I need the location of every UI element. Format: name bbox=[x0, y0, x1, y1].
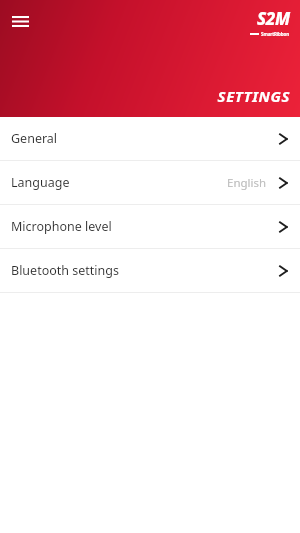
button[interactable]: S2M SmartRibbon logo bbox=[250, 7, 290, 37]
staticText: Microphone level bbox=[11, 218, 112, 235]
button[interactable]: Microphone level bbox=[0, 205, 300, 248]
staticText: SmartRibbon bbox=[261, 31, 290, 37]
staticText: S2M bbox=[257, 7, 290, 30]
staticText: SETTINGS bbox=[217, 86, 290, 106]
button[interactable]: Bluetooth settings bbox=[0, 249, 300, 292]
button[interactable]: Language bbox=[0, 161, 300, 204]
button[interactable]: Open navigation menu bbox=[5, 6, 35, 36]
button[interactable]: General bbox=[0, 117, 300, 160]
staticText: English bbox=[227, 175, 267, 191]
staticText: General bbox=[11, 130, 58, 147]
staticText: Language bbox=[11, 174, 70, 191]
staticText: Bluetooth settings bbox=[11, 262, 119, 279]
